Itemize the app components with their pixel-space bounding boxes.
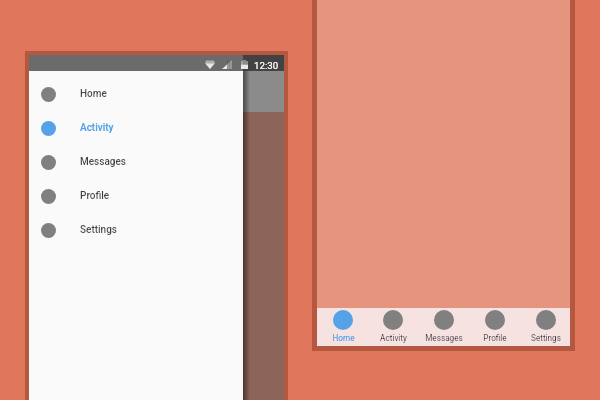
button[interactable]: Settings (520, 308, 571, 346)
other: Mobile signal (222, 60, 232, 69)
button[interactable]: Activity (368, 308, 418, 346)
button[interactable]: Messages (418, 308, 469, 346)
button[interactable]: Profile (469, 308, 520, 346)
staticText: Activity (80, 122, 114, 134)
button[interactable]: Messages (29, 145, 243, 179)
staticText: Messages (425, 333, 463, 343)
staticText: Profile (483, 333, 507, 343)
other: Battery (241, 60, 248, 69)
staticText: Settings (531, 333, 561, 343)
staticText: Settings (80, 224, 118, 236)
button[interactable]: Home (318, 308, 368, 346)
staticText: Messages (80, 156, 126, 168)
button[interactable]: Profile (29, 179, 243, 213)
staticText: Home (332, 333, 355, 343)
button[interactable]: Activity (29, 111, 243, 145)
staticText: Home (80, 88, 107, 100)
other: Wi-Fi (205, 60, 215, 69)
staticText: 12:30 (254, 60, 279, 71)
staticText: Profile (80, 190, 110, 202)
button[interactable]: Settings (29, 213, 243, 247)
staticText: Activity (380, 333, 407, 343)
button[interactable]: Home (29, 77, 243, 111)
